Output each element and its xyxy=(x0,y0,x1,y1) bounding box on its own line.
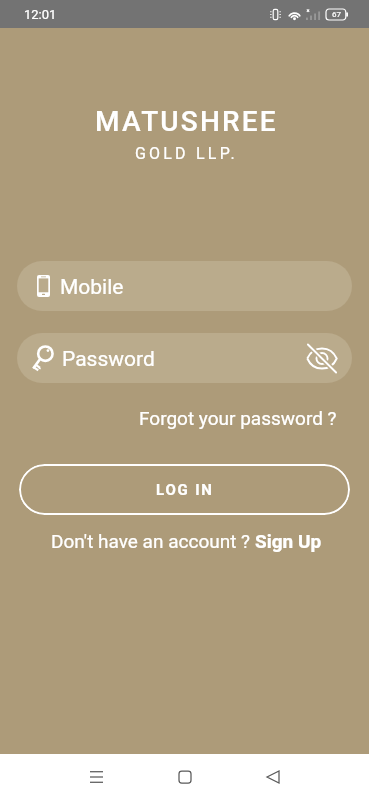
button[interactable]: LOG IN xyxy=(19,464,350,515)
staticText: Password xyxy=(62,347,307,372)
button[interactable]: Recent apps xyxy=(52,754,141,800)
button[interactable]: Show password xyxy=(307,343,337,373)
staticText: 12:01 xyxy=(24,7,57,22)
button[interactable]: Password xyxy=(17,333,352,383)
button[interactable]: Home xyxy=(141,754,229,800)
button[interactable]: Back xyxy=(229,754,317,800)
staticText: MATUSHREE xyxy=(95,105,278,138)
button[interactable]: Mobile xyxy=(17,261,352,311)
staticText: 67 xyxy=(332,10,341,19)
staticText: LOG IN xyxy=(156,481,214,499)
staticText: Don't have an account ? xyxy=(51,530,255,552)
staticText: GOLD LLP. xyxy=(135,144,238,163)
staticText: Mobile xyxy=(60,275,124,300)
button[interactable]: Sign Up xyxy=(255,530,322,552)
button[interactable]: Forgot your password ? xyxy=(139,407,337,429)
